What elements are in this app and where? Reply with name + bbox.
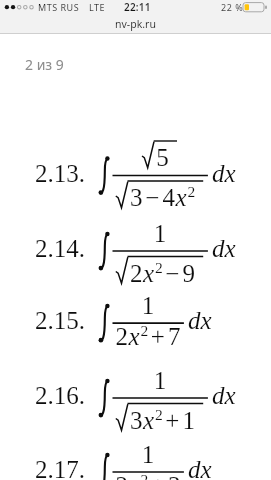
button[interactable]: Address bar nv-pk.ru: [0, 15, 271, 33]
